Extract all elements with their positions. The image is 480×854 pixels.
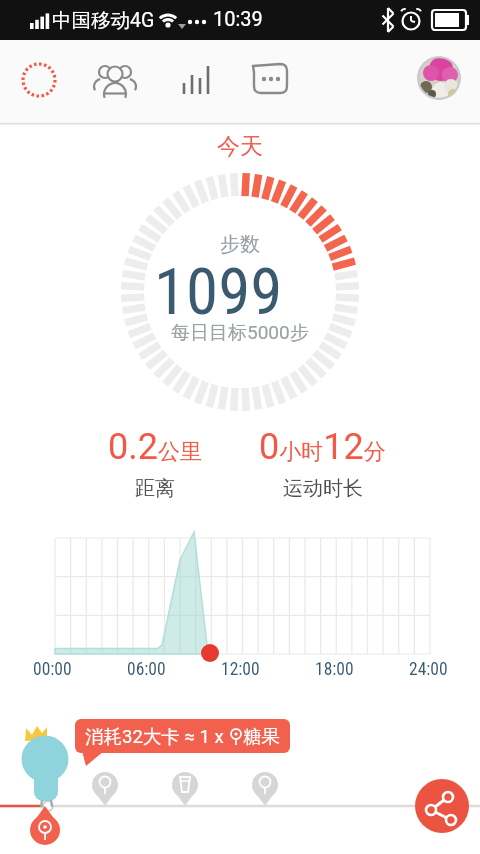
staticText: 距离: [135, 476, 175, 501]
staticText: 运动时长: [283, 476, 363, 501]
staticText: 24:00: [409, 659, 448, 680]
staticText: 中国移动4G: [52, 8, 155, 33]
button[interactable]: [171, 770, 199, 808]
staticText: 0小时12分: [259, 426, 386, 468]
staticText: 每日目标5000步: [171, 321, 309, 345]
button[interactable]: [248, 58, 292, 102]
staticText: 1099: [154, 254, 283, 330]
staticText: 步数: [220, 232, 260, 256]
button[interactable]: [417, 56, 461, 100]
button[interactable]: [93, 58, 137, 102]
staticText: 12:00: [221, 659, 260, 680]
staticText: 06:00: [127, 659, 166, 680]
staticText: 今天: [217, 132, 263, 160]
button[interactable]: [173, 58, 217, 102]
staticText: 18:00: [315, 659, 354, 680]
staticText: 10:39: [213, 7, 263, 30]
staticText: 糖果: [243, 725, 280, 748]
button[interactable]: [251, 770, 279, 808]
staticText: 0.2公里: [108, 426, 202, 468]
button[interactable]: 消耗32大卡 ≈ 1 x: [75, 719, 290, 753]
staticText: 00:00: [33, 659, 72, 680]
button[interactable]: [415, 779, 469, 833]
button[interactable]: [27, 806, 65, 848]
button[interactable]: [17, 58, 61, 102]
staticText: 消耗32大卡 ≈ 1 x: [85, 725, 229, 748]
button[interactable]: [91, 770, 119, 808]
